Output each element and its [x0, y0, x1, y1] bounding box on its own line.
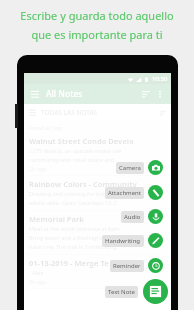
staticText: Text Note	[108, 288, 135, 296]
staticText: Handwriting	[105, 237, 141, 245]
other: Audio	[148, 209, 163, 224]
button[interactable]: Text Note	[105, 279, 168, 304]
button[interactable]: 01-13-2019 - Merge Te	[29, 255, 166, 288]
button[interactable]: Sort	[140, 88, 152, 100]
button[interactable]: Walnut Street Condo Develo	[29, 133, 166, 175]
staticText: Reminder	[113, 262, 141, 270]
other: Handwriting	[148, 233, 163, 248]
staticText: 1275 Walnut, an upscale mixed-use	[29, 147, 122, 155]
other: Camera	[148, 160, 163, 175]
staticText: - Alex	[29, 269, 44, 277]
staticText: Memorial Park	[29, 214, 84, 224]
button[interactable]: Memorial Park	[29, 211, 166, 254]
button[interactable]: Handwriting	[102, 233, 163, 248]
staticText: 10:30	[152, 75, 168, 83]
staticText: Drawing and coloring for kids and	[29, 190, 119, 198]
staticText: Camera	[119, 164, 141, 172]
staticText: adults alike. Open Saturdays 10-2	[29, 199, 117, 207]
staticText: TODAS LAS NOTAS	[41, 108, 98, 117]
staticText: have one. The trail is 3 miles long.	[29, 243, 118, 251]
staticText: Walnut Street Condo Develo	[29, 136, 134, 146]
button[interactable]: Audio	[121, 209, 163, 224]
staticText: Bring water and a flashlight if you	[29, 234, 118, 242]
staticText: Attachment	[108, 189, 141, 197]
button[interactable]: Menu	[29, 88, 41, 100]
button[interactable]: Camera	[116, 160, 163, 175]
button[interactable]: Rainbow Colors - Community	[29, 176, 166, 210]
staticText: Escribe y guarda todo aquello	[20, 8, 174, 23]
other: Reminder	[148, 258, 163, 273]
other: Attachment	[148, 185, 163, 200]
staticText: Rainbow Colors - Community	[29, 179, 137, 189]
staticText: community with retail space and	[29, 156, 115, 164]
button[interactable]: Reminder	[110, 258, 163, 273]
staticText: Meet at the north entrance at 6pm.	[29, 225, 122, 233]
other: Text Note	[143, 279, 168, 304]
staticText: Audio	[124, 213, 141, 221]
button[interactable]: More options	[154, 88, 166, 100]
staticText: 01-13-2019 - Merge Te	[29, 258, 109, 268]
staticText: que es importante para ti	[31, 27, 163, 42]
button[interactable]: Attachment	[105, 185, 163, 200]
staticText: All Notes	[46, 88, 83, 100]
